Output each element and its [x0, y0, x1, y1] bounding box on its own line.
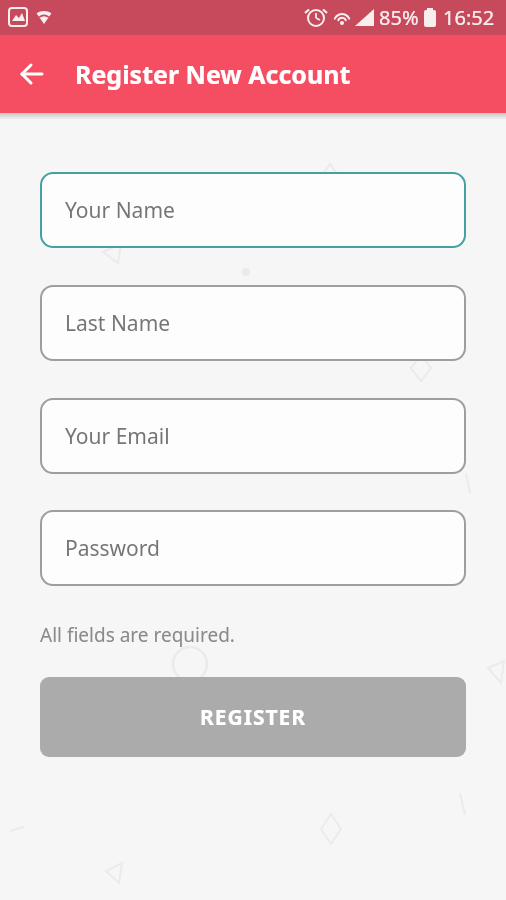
staticText: Your Email — [65, 422, 170, 451]
button[interactable]: Your Name — [40, 172, 466, 248]
staticText: 85% — [379, 4, 419, 31]
staticText: REGISTER — [200, 703, 307, 732]
button[interactable]: REGISTER — [40, 677, 466, 757]
button[interactable]: Password — [40, 510, 466, 586]
staticText: Last Name — [65, 309, 171, 338]
button[interactable]: Last Name — [40, 285, 466, 361]
staticText: Your Name — [65, 196, 175, 225]
button[interactable] — [0, 35, 64, 113]
staticText: 16:52 — [443, 4, 495, 31]
button[interactable]: Your Email — [40, 398, 466, 474]
staticText: Password — [65, 534, 160, 563]
staticText: All fields are required. — [40, 622, 235, 648]
staticText: Register New Account — [75, 57, 351, 91]
